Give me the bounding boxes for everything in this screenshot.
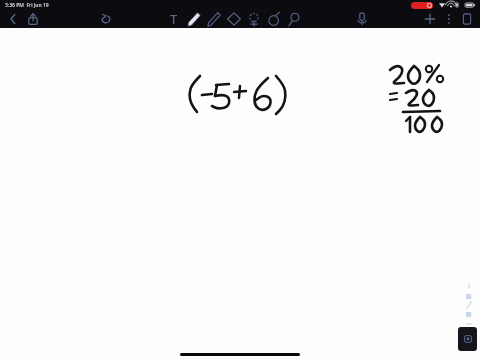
button[interactable]: T: [166, 10, 182, 28]
button[interactable]: Zoom: [286, 10, 302, 28]
button[interactable]: [411, 2, 433, 9]
button[interactable]: Pen: [206, 10, 222, 28]
button[interactable]: Pages: [460, 11, 474, 27]
button[interactable]: Share: [26, 11, 40, 27]
button[interactable]: Shapes: [266, 10, 282, 28]
button[interactable]: Back: [6, 11, 20, 27]
button[interactable]: Undo: [98, 11, 114, 27]
button[interactable]: Marker: [186, 10, 202, 28]
button[interactable]: More options: [444, 11, 454, 27]
button[interactable]: Microphone: [355, 10, 369, 28]
button[interactable]: Select: [246, 10, 262, 28]
button[interactable]: [0, 28, 480, 360]
staticText: T: [170, 10, 178, 28]
button[interactable]: Add page: [422, 11, 438, 27]
button[interactable]: Eraser: [226, 10, 242, 28]
staticText: 3:36 PM Fri Jun 19: [5, 2, 49, 9]
button[interactable]: Page thumbnails: [458, 327, 477, 351]
